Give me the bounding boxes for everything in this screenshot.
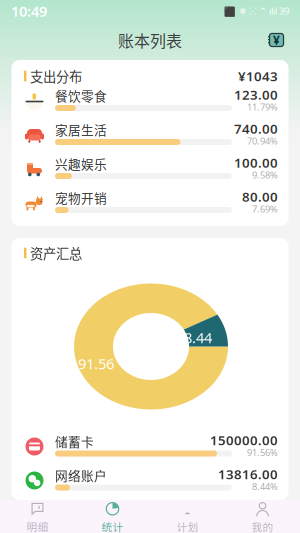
staticText: 11.79% [247,101,278,113]
staticText: 8.44% [252,480,278,493]
staticText: 9.58% [252,169,278,181]
staticText: 兴趣娱乐 [55,154,107,173]
staticText: 150000.00 [210,431,278,449]
staticText: 91.56 [78,354,114,373]
button[interactable]: 我的 [225,500,300,533]
button[interactable]: 统计 [75,500,150,533]
staticText: 账本列表 [118,28,182,52]
staticText: 91.56% [247,446,278,459]
staticText: 70.94% [247,135,278,147]
staticText: 我的 [251,519,273,533]
staticText: ¥ [273,32,280,48]
staticText: 宠物开销 [55,188,107,207]
staticText: 100.00 [234,154,278,171]
button[interactable]: 计划 [150,500,225,533]
staticText: 13816.00 [218,465,278,483]
staticText: 网络账户 [55,466,107,484]
staticText: 餐饮零食 [55,86,107,105]
staticText: 123.00 [234,86,278,103]
staticText: 统计 [101,519,123,533]
staticText: ¥1043 [238,67,278,85]
staticText: 8.44 [184,328,212,347]
button[interactable]: 明细 [0,500,75,533]
button[interactable]: 账本 [262,24,290,56]
staticText: 支出分布 [30,66,82,86]
staticText: 明细 [26,519,48,533]
staticText: 80.00 [242,188,278,205]
staticText: 计划 [176,519,198,533]
staticText: 储蓄卡 [55,432,94,450]
staticText: 10:49 [11,1,47,21]
staticText: 家居生活 [55,120,107,139]
staticText: ⬛ ❄ ⁙ ⌃ ılıl 39 [224,5,289,17]
staticText: 资产汇总 [30,243,82,263]
staticText: 740.00 [234,120,278,137]
staticText: 7.69% [252,203,278,215]
